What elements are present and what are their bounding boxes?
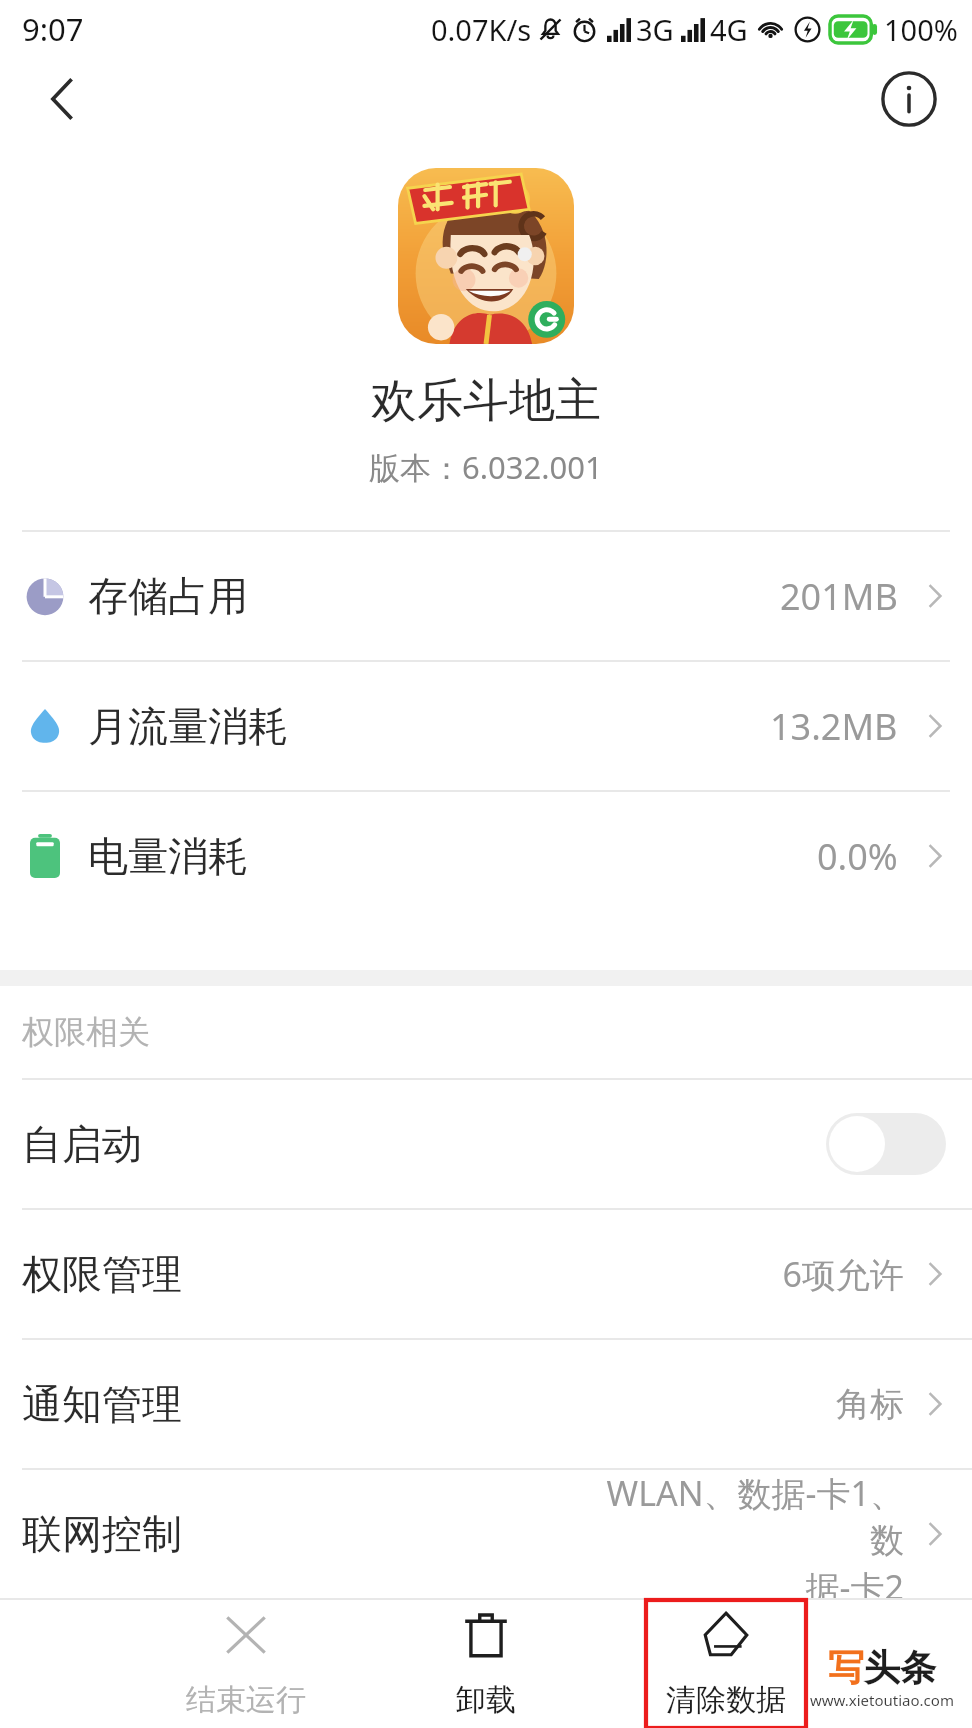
- staticText: 13.2MB: [770, 702, 898, 751]
- staticText: 自启动: [22, 1119, 142, 1169]
- staticText: 100%: [884, 10, 958, 49]
- staticText: WLAN、数据-卡1、数 据-卡2: [574, 1470, 904, 1598]
- staticText: www.xietoutiao.com: [810, 1690, 954, 1710]
- staticText: 存储占用: [88, 571, 248, 621]
- staticText: 卸载: [456, 1681, 516, 1719]
- staticText: 电量消耗: [88, 831, 248, 881]
- staticText: 联网控制: [22, 1509, 182, 1559]
- staticText: 结束运行: [186, 1681, 306, 1719]
- staticText: 角标: [624, 1383, 904, 1426]
- staticText: 权限相关: [22, 1012, 150, 1052]
- staticText: 清除数据: [666, 1681, 786, 1719]
- staticText: 欢乐斗地主: [371, 372, 601, 430]
- staticText: 201MB: [780, 572, 898, 621]
- staticText: 6项允许: [624, 1251, 904, 1297]
- staticText: 9:07: [22, 8, 84, 50]
- button[interactable]: Back: [22, 58, 104, 140]
- staticText: 月流量消耗: [88, 701, 288, 751]
- button[interactable]: 电量消耗: [0, 792, 972, 920]
- staticText: 0.07K/s: [431, 10, 532, 49]
- button[interactable]: App info: [868, 58, 950, 140]
- button[interactable]: 通知管理: [0, 1340, 972, 1468]
- staticText: 通知管理: [22, 1379, 182, 1429]
- button[interactable]: 联网控制: [0, 1470, 972, 1598]
- button[interactable]: 自启动: [0, 1080, 972, 1208]
- staticText: 3G: [636, 10, 674, 49]
- button[interactable]: 权限管理: [0, 1210, 972, 1338]
- staticText: 权限管理: [22, 1249, 182, 1299]
- staticText: 版本：6.032.001: [369, 446, 603, 488]
- staticText: 4G: [710, 10, 748, 49]
- button[interactable]: 存储占用: [0, 532, 972, 660]
- staticText: 头条: [864, 1645, 936, 1690]
- button[interactable]: 卸载: [406, 1600, 566, 1728]
- button[interactable]: 结束运行: [166, 1600, 326, 1728]
- button[interactable]: 月流量消耗: [0, 662, 972, 790]
- button[interactable]: 清除数据: [646, 1600, 806, 1728]
- staticText: 0.0%: [817, 832, 898, 881]
- staticText: 写: [828, 1645, 864, 1690]
